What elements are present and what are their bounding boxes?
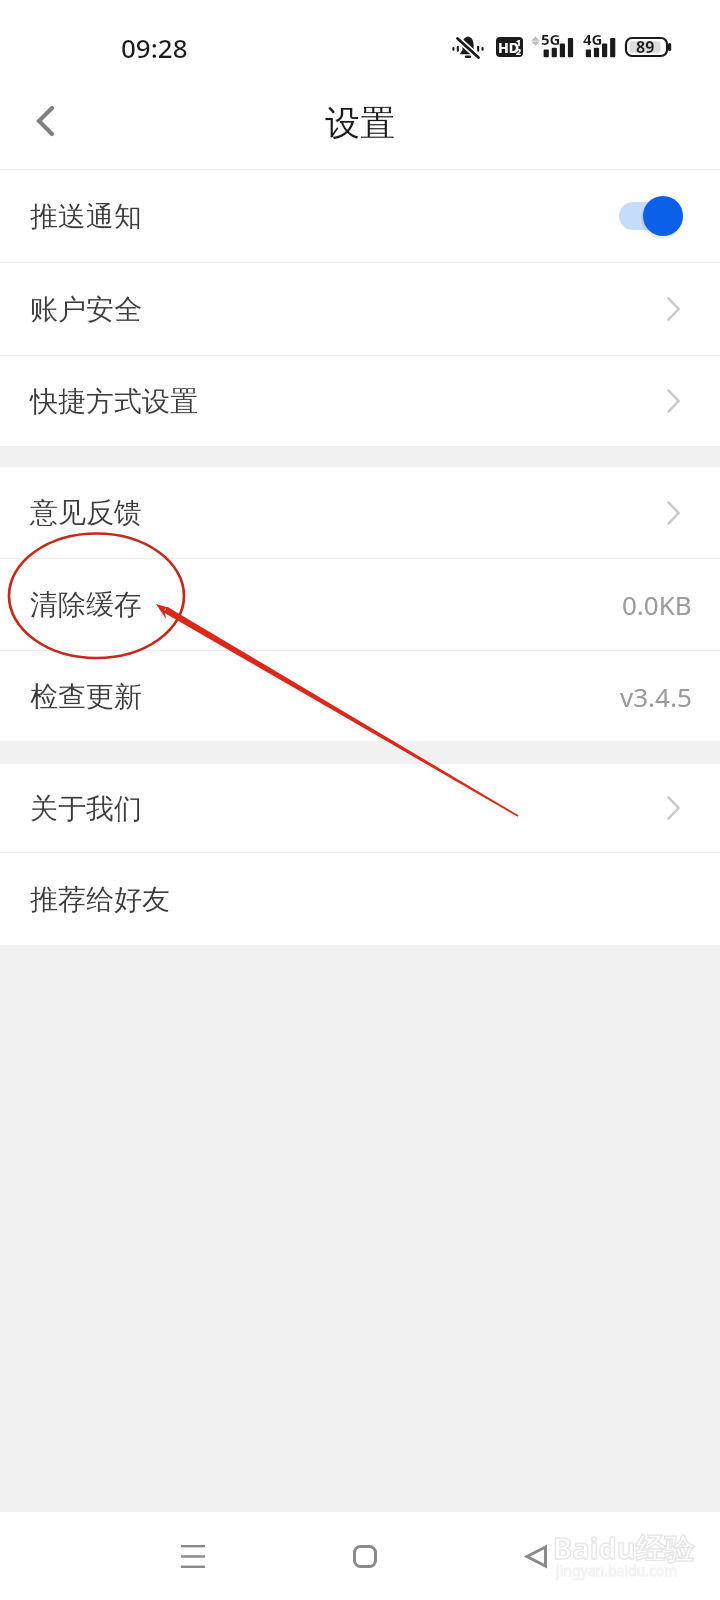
staticText: 推荐给好友 bbox=[30, 882, 170, 917]
staticText: Baidu经验 bbox=[553, 1528, 694, 1568]
button[interactable]: Back bbox=[498, 1512, 574, 1600]
button[interactable]: 检查更新 bbox=[0, 651, 720, 741]
button[interactable]: 账户安全 bbox=[0, 263, 720, 355]
staticText: jingyan.baidu.com bbox=[556, 1561, 678, 1580]
staticText: v3.4.5 bbox=[620, 679, 692, 714]
staticText: 关于我们 bbox=[30, 791, 142, 826]
staticText: HD bbox=[498, 38, 519, 57]
button[interactable]: Toggle push notifications bbox=[612, 193, 683, 239]
button[interactable]: 意见反馈 bbox=[0, 467, 720, 558]
button[interactable]: Recent apps bbox=[155, 1512, 231, 1600]
staticText: 09:28 bbox=[121, 30, 188, 65]
staticText: 2 bbox=[516, 45, 522, 57]
staticText: 89 bbox=[636, 36, 655, 58]
staticText: 5G bbox=[541, 29, 561, 49]
button[interactable]: Home bbox=[327, 1512, 403, 1600]
staticText: 检查更新 bbox=[30, 679, 142, 714]
staticText: 账户安全 bbox=[30, 292, 142, 327]
button[interactable]: 关于我们 bbox=[0, 764, 720, 852]
button[interactable]: 快捷方式设置 bbox=[0, 356, 720, 446]
staticText: 清除缓存 bbox=[30, 587, 142, 622]
staticText: 推送通知 bbox=[30, 199, 142, 234]
button[interactable]: 推送通知 bbox=[0, 170, 720, 262]
staticText: 设置 bbox=[325, 101, 395, 145]
button[interactable]: 清除缓存 bbox=[0, 559, 720, 650]
staticText: 快捷方式设置 bbox=[30, 384, 198, 419]
staticText: 4G bbox=[583, 29, 603, 49]
staticText: 1 bbox=[516, 36, 522, 48]
staticText: 0.0KB bbox=[622, 587, 692, 622]
button[interactable]: Back bbox=[0, 76, 90, 169]
button[interactable]: 推荐给好友 bbox=[0, 853, 720, 945]
staticText: 意见反馈 bbox=[30, 495, 142, 530]
